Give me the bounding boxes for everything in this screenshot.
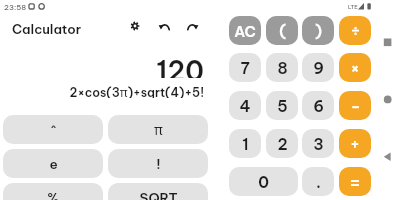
- button[interactable]: 8: [266, 53, 298, 82]
- staticText: ): [315, 21, 322, 40]
- button[interactable]: Settings: [127, 18, 143, 34]
- staticText: 7: [240, 58, 250, 78]
- staticText: LTE: [348, 3, 358, 10]
- button[interactable]: π: [108, 115, 208, 144]
- staticText: 120: [156, 54, 204, 78]
- button[interactable]: .: [302, 167, 334, 196]
- staticText: .: [316, 172, 321, 192]
- staticText: 5: [277, 96, 288, 116]
- button[interactable]: =: [339, 167, 371, 196]
- button[interactable]: Calculator: [12, 21, 82, 37]
- button[interactable]: 1: [229, 129, 261, 158]
- staticText: 9: [313, 58, 324, 78]
- staticText: +: [350, 134, 360, 154]
- button[interactable]: Back: [380, 149, 396, 165]
- button[interactable]: +: [339, 129, 371, 158]
- staticText: AC: [234, 22, 256, 40]
- button[interactable]: 7: [229, 53, 261, 82]
- staticText: 4: [239, 96, 251, 116]
- button[interactable]: ^: [3, 115, 103, 144]
- button[interactable]: !: [108, 149, 208, 178]
- staticText: ^: [49, 121, 58, 138]
- button[interactable]: 2: [266, 129, 298, 158]
- button[interactable]: −: [339, 91, 371, 120]
- button[interactable]: 4: [229, 91, 261, 120]
- button[interactable]: 6: [302, 91, 334, 120]
- button[interactable]: 5: [266, 91, 298, 120]
- staticText: ×: [350, 58, 360, 78]
- staticText: 3: [313, 134, 324, 154]
- staticText: 6: [313, 96, 324, 116]
- staticText: 8: [277, 58, 288, 78]
- button[interactable]: ×: [339, 53, 371, 82]
- button[interactable]: Home: [380, 92, 396, 108]
- staticText: !: [156, 155, 161, 172]
- button[interactable]: ÷: [339, 16, 371, 45]
- staticText: π: [154, 121, 163, 139]
- button[interactable]: Recents: [380, 34, 396, 50]
- staticText: 2: [277, 134, 288, 154]
- button[interactable]: 3: [302, 129, 334, 158]
- button[interactable]: ): [302, 16, 334, 45]
- button[interactable]: Redo: [184, 19, 200, 35]
- staticText: =: [349, 172, 361, 192]
- staticText: 1: [242, 134, 249, 154]
- staticText: 23:58: [4, 2, 27, 11]
- staticText: 2×cos(3π)+sqrt(4)+5!: [69, 84, 204, 98]
- staticText: (: [279, 21, 286, 40]
- staticText: ÷: [350, 21, 361, 40]
- staticText: e: [49, 155, 58, 172]
- staticText: %: [47, 189, 59, 200]
- button[interactable]: e: [3, 149, 103, 178]
- button[interactable]: (: [266, 16, 298, 45]
- staticText: SQRT: [139, 189, 178, 200]
- button[interactable]: AC: [229, 16, 261, 45]
- staticText: 0: [258, 172, 269, 192]
- staticText: −: [350, 96, 361, 116]
- button[interactable]: SQRT: [108, 183, 208, 200]
- button[interactable]: 9: [302, 53, 334, 82]
- button[interactable]: %: [3, 183, 103, 200]
- button[interactable]: 0: [229, 167, 298, 196]
- button[interactable]: Undo: [157, 19, 173, 35]
